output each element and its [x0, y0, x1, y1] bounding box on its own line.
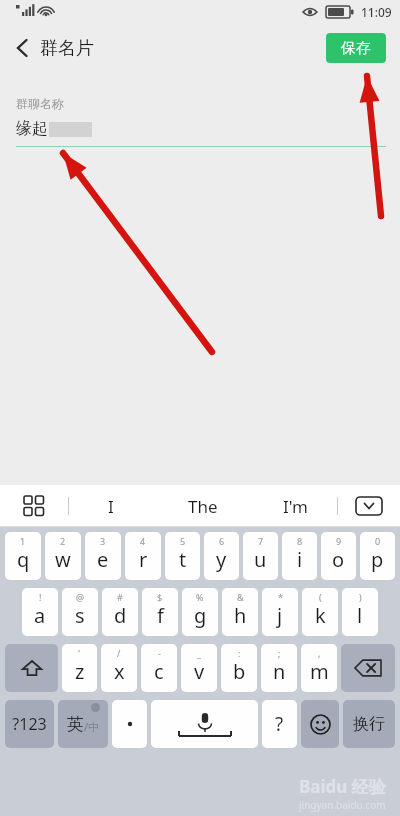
- staticText: ,: [318, 647, 321, 659]
- staticText: 英: [67, 714, 84, 735]
- staticText: ): [359, 591, 362, 603]
- staticText: e: [97, 546, 109, 573]
- staticText: 缘起: [16, 119, 48, 139]
- button[interactable]: Hide keyboard: [338, 485, 400, 527]
- button[interactable]: 3: [85, 532, 121, 580]
- staticText: l: [357, 602, 363, 629]
- button[interactable]: (: [302, 588, 338, 636]
- button[interactable]: 8: [282, 532, 317, 580]
- staticText: n: [273, 658, 286, 685]
- button[interactable]: ): [342, 588, 378, 636]
- staticText: q: [17, 546, 30, 573]
- staticText: c: [154, 658, 164, 685]
- button[interactable]: 保存: [326, 33, 386, 63]
- staticText: h: [234, 602, 247, 629]
- staticText: (: [319, 591, 322, 603]
- staticText: I: [108, 495, 114, 518]
- button[interactable]: Emoji: [301, 700, 339, 748]
- staticText: o: [332, 546, 345, 573]
- staticText: g: [194, 602, 207, 629]
- button[interactable]: ;: [261, 644, 297, 692]
- staticText: ': [78, 647, 81, 659]
- staticText: m: [310, 658, 329, 685]
- staticText: 6: [219, 535, 225, 547]
- button[interactable]: 4: [125, 532, 161, 580]
- staticText: $: [157, 591, 163, 603]
- staticText: I'm: [283, 495, 308, 518]
- button[interactable]: ,: [301, 644, 337, 692]
- staticText: -: [158, 647, 161, 659]
- staticText: *: [278, 591, 283, 603]
- button[interactable]: Backspace: [341, 644, 395, 692]
- staticText: t: [179, 546, 187, 573]
- staticText: 换行: [353, 714, 385, 734]
- staticText: w: [55, 546, 71, 573]
- staticText: 11:09: [361, 4, 392, 20]
- staticText: 群名片: [40, 37, 94, 60]
- button[interactable]: @: [62, 588, 98, 636]
- button[interactable]: :: [221, 644, 257, 692]
- button[interactable]: Shift: [5, 644, 58, 692]
- staticText: %: [196, 591, 204, 603]
- staticText: The: [188, 495, 218, 518]
- button[interactable]: 2: [45, 532, 81, 580]
- button[interactable]: !: [22, 588, 58, 636]
- staticText: /中: [84, 719, 100, 734]
- staticText: z: [75, 658, 85, 685]
- staticText: u: [254, 546, 267, 573]
- button[interactable]: [112, 700, 147, 748]
- button[interactable]: I'm: [253, 485, 337, 527]
- staticText: x: [114, 658, 125, 685]
- staticText: @: [76, 591, 85, 603]
- button[interactable]: *: [262, 588, 298, 636]
- button[interactable]: -: [141, 644, 177, 692]
- button[interactable]: #: [102, 588, 138, 636]
- button[interactable]: I: [69, 485, 152, 527]
- staticText: a: [34, 602, 46, 629]
- staticText: ?: [275, 711, 284, 737]
- button[interactable]: %: [182, 588, 218, 636]
- staticText: Baidu 经验: [299, 775, 386, 798]
- staticText: ;: [278, 647, 281, 659]
- staticText: 群聊名称: [16, 96, 64, 111]
- button[interactable]: 0: [360, 532, 395, 580]
- button[interactable]: 换行: [343, 700, 395, 748]
- staticText: /: [117, 647, 121, 659]
- staticText: :: [238, 647, 241, 659]
- button[interactable]: 5: [165, 532, 200, 580]
- button[interactable]: The: [152, 485, 253, 527]
- staticText: 7: [258, 535, 264, 547]
- button[interactable]: Space: [151, 700, 258, 748]
- button[interactable]: 英: [58, 700, 108, 748]
- staticText: j: [277, 602, 283, 629]
- button[interactable]: /: [101, 644, 137, 692]
- staticText: p: [371, 546, 384, 573]
- staticText: 2: [60, 535, 66, 547]
- button[interactable]: _: [181, 644, 217, 692]
- button[interactable]: ?: [262, 700, 297, 748]
- staticText: ?123: [12, 713, 47, 735]
- staticText: r: [139, 546, 148, 573]
- staticText: 5: [180, 535, 186, 547]
- staticText: !: [39, 591, 42, 603]
- button[interactable]: ?123: [5, 700, 54, 748]
- button[interactable]: Keyboard menu: [0, 485, 68, 527]
- button[interactable]: 7: [243, 532, 278, 580]
- staticText: 3: [100, 535, 106, 547]
- button[interactable]: 9: [321, 532, 356, 580]
- staticText: v: [194, 658, 205, 685]
- staticText: i: [297, 546, 303, 573]
- staticText: _: [197, 647, 201, 659]
- staticText: #: [117, 591, 123, 603]
- button[interactable]: &: [222, 588, 258, 636]
- staticText: b: [233, 658, 246, 685]
- button[interactable]: ': [62, 644, 97, 692]
- staticText: 1: [20, 535, 26, 547]
- staticText: d: [114, 602, 127, 629]
- button[interactable]: 6: [204, 532, 239, 580]
- staticText: &: [237, 591, 244, 603]
- button[interactable]: Back: [0, 28, 40, 68]
- staticText: jingyan.baidu.com: [299, 798, 386, 812]
- button[interactable]: $: [142, 588, 178, 636]
- button[interactable]: 1: [5, 532, 41, 580]
